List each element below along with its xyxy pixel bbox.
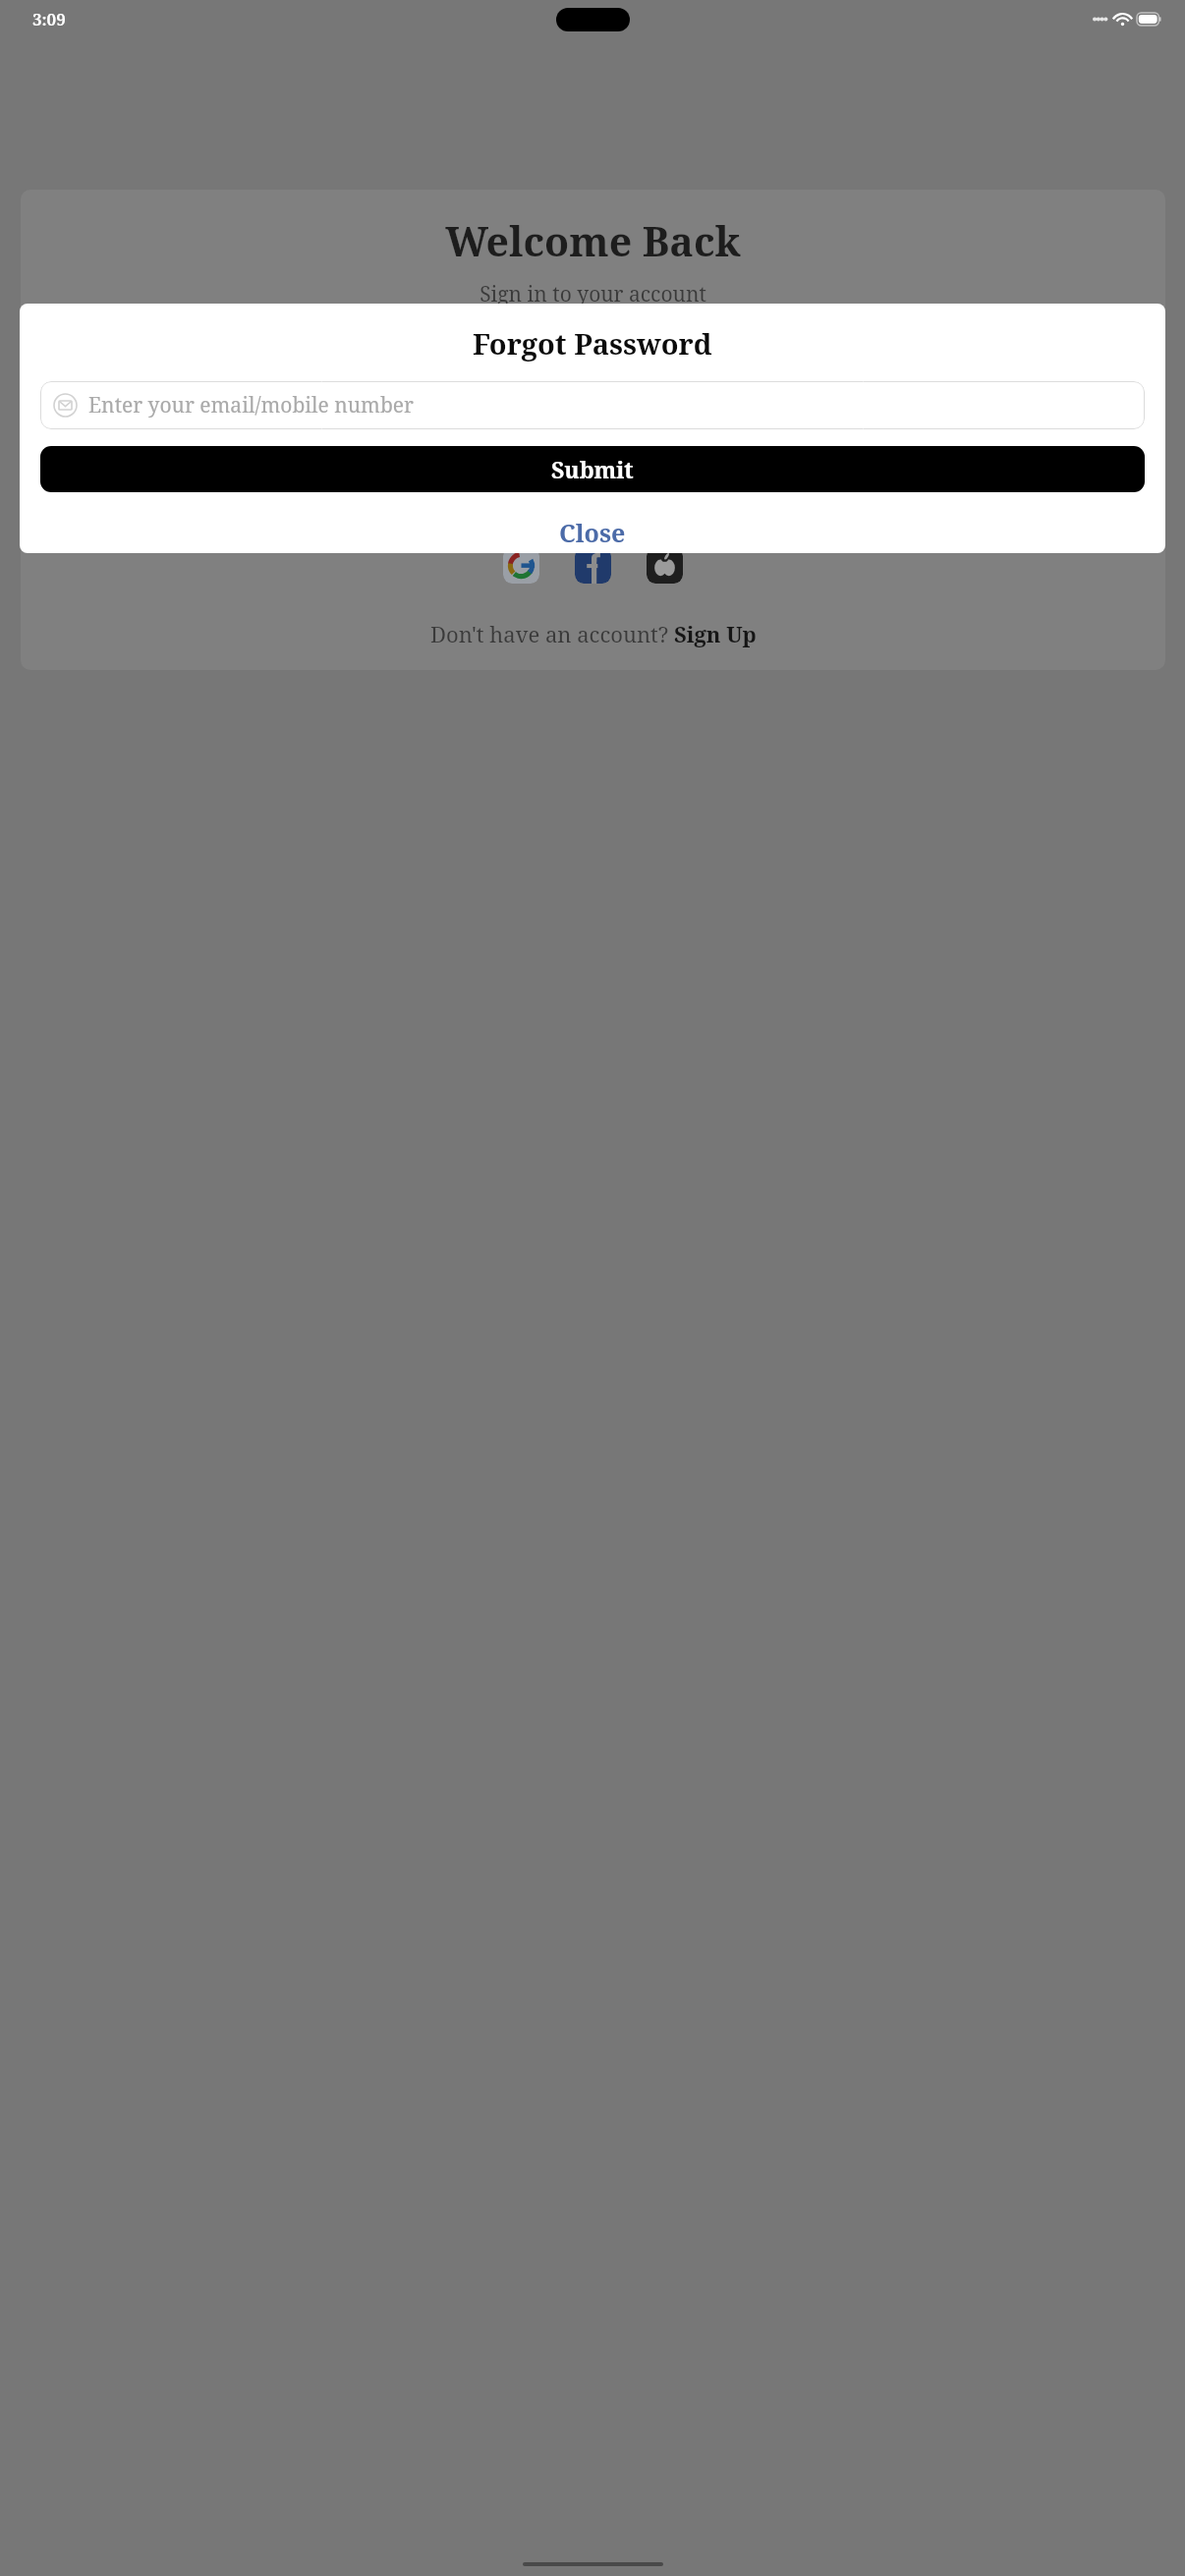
staticText: Forgot Password xyxy=(473,324,712,363)
button[interactable]: Close xyxy=(20,512,1165,553)
staticText: Close xyxy=(559,516,626,549)
button[interactable] xyxy=(30,336,1156,403)
button[interactable]: Sign in with Facebook xyxy=(575,547,611,584)
button[interactable]: Enter your email/mobile number xyxy=(40,381,1145,429)
staticText: Don't have an account? Sign Up xyxy=(430,619,757,648)
staticText: Enter your email/mobile number xyxy=(88,391,414,420)
staticText: Sign in to your account xyxy=(480,280,706,308)
staticText: 3:09 xyxy=(32,8,66,30)
button[interactable]: Sign in with Apple xyxy=(647,547,683,584)
button[interactable]: Sign in with Google xyxy=(503,547,539,584)
staticText: Submit xyxy=(551,454,634,484)
staticText: Welcome Back xyxy=(445,213,741,268)
button[interactable]: Don't have an account? Sign Up xyxy=(21,619,1165,648)
button[interactable]: Submit xyxy=(40,446,1145,492)
